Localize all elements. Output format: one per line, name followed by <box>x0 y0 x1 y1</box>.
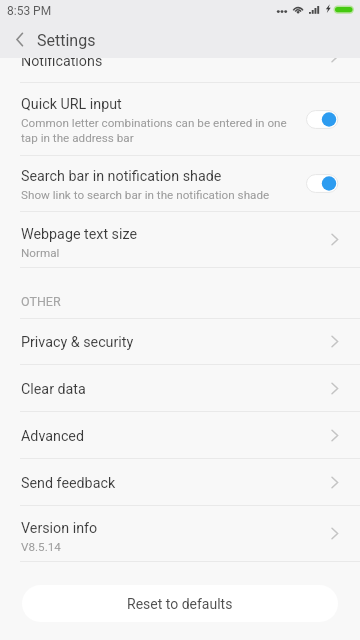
staticText: Version info <box>21 520 98 537</box>
staticText: Quick URL input <box>21 96 122 113</box>
staticText: OTHER <box>21 294 61 309</box>
button[interactable]: Version info <box>0 506 360 561</box>
staticText: Common letter combinations can be entere… <box>21 116 287 145</box>
staticText: V8.5.14 <box>21 540 61 554</box>
button[interactable]: Back <box>0 22 40 58</box>
staticText: Search bar in notification shade <box>21 168 222 185</box>
staticText: Settings <box>37 31 96 50</box>
button[interactable]: Send feedback <box>0 459 360 505</box>
staticText: Privacy & security <box>21 334 134 351</box>
staticText: Show link to search bar in the notificat… <box>21 188 270 202</box>
button[interactable] <box>306 173 339 194</box>
button[interactable]: Privacy & security <box>0 319 360 364</box>
button[interactable]: Advanced <box>0 412 360 458</box>
staticText: Advanced <box>21 428 85 445</box>
staticText: Webpage text size <box>21 226 138 243</box>
staticText: Notifications <box>21 58 103 70</box>
button[interactable]: Reset to defaults <box>22 585 338 622</box>
staticText: Reset to defaults <box>127 596 233 612</box>
staticText: Normal <box>21 246 60 260</box>
staticText: 8:53 PM <box>7 4 52 18</box>
button[interactable] <box>306 109 339 130</box>
button[interactable]: Notifications <box>0 58 360 73</box>
staticText: Clear data <box>21 381 86 398</box>
button[interactable]: Quick URL input <box>0 83 360 155</box>
button[interactable]: Webpage text size <box>0 212 360 267</box>
button[interactable]: Clear data <box>0 365 360 411</box>
button[interactable]: Search bar in notification shade <box>0 156 360 211</box>
staticText: Send feedback <box>21 475 116 492</box>
